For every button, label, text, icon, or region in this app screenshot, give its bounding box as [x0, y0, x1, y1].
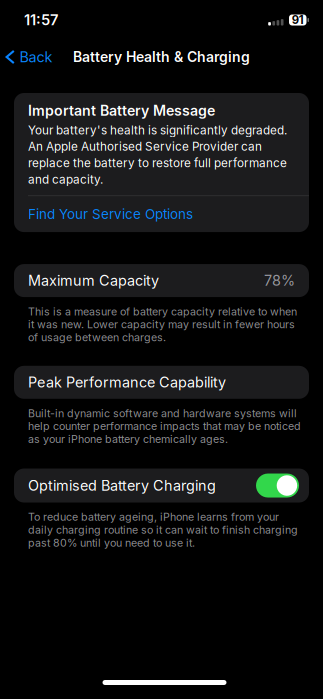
staticText: Battery Health & Charging: [73, 48, 250, 65]
staticText: Your battery's health is significantly d…: [28, 123, 287, 186]
staticText: This is a measure of battery capacity re…: [28, 305, 297, 344]
staticText: Maximum Capacity: [28, 272, 159, 289]
staticText: 91: [292, 13, 304, 27]
staticText: Peak Performance Capability: [28, 374, 226, 391]
staticText: Back: [19, 48, 52, 66]
staticText: Find Your Service Options: [28, 206, 193, 222]
button[interactable]: Optimised Battery Charging: [14, 468, 309, 502]
staticText: 11:57: [24, 11, 58, 29]
button[interactable]: Find Your Service Options: [14, 196, 309, 232]
staticText: Optimised Battery Charging: [28, 477, 216, 494]
staticText: Important Battery Message: [28, 102, 215, 119]
staticText: Built-in dynamic software and hardware s…: [28, 407, 301, 445]
button[interactable]: Back: [0, 43, 62, 71]
staticText: To reduce battery ageing, iPhone learns …: [28, 510, 298, 549]
staticText: 78%: [264, 272, 295, 289]
button[interactable]: Peak Performance Capability: [14, 366, 309, 399]
